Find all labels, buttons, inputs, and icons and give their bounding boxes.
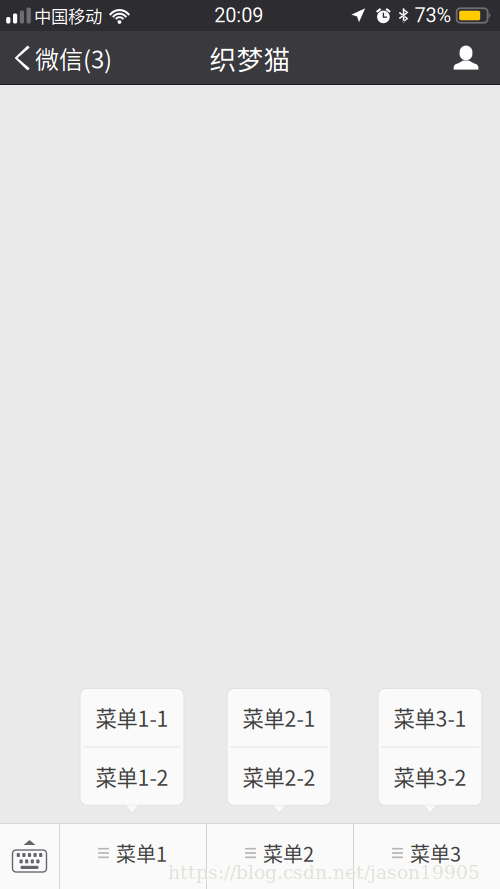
button[interactable]: 菜单1 (59, 823, 206, 889)
staticText: 菜单2-2 (242, 761, 315, 792)
staticText: 菜单1 (116, 838, 167, 867)
button[interactable]: 菜单2 (206, 823, 353, 889)
button[interactable]: 菜单3-1 (378, 688, 482, 746)
button[interactable]: 菜单3-2 (378, 747, 482, 805)
staticText: 菜单2-1 (242, 702, 315, 733)
staticText: 菜单3-2 (393, 761, 466, 792)
staticText: https://blog.csdn.net/jason19905 (168, 862, 480, 883)
staticText: 73% (415, 4, 452, 27)
button[interactable]: 菜单2-2 (227, 747, 331, 805)
staticText: 菜单3-1 (393, 702, 466, 733)
button[interactable]: 微信(3) (0, 31, 124, 85)
button[interactable]: 菜单1-1 (80, 688, 184, 746)
staticText: 微信(3) (35, 41, 112, 75)
button[interactable]: Keyboard (0, 823, 59, 889)
button[interactable]: 菜单1-2 (80, 747, 184, 805)
staticText: 菜单3 (410, 838, 461, 867)
staticText: 织梦猫 (209, 39, 290, 77)
staticText: 菜单1-1 (95, 702, 168, 733)
staticText: 菜单1-2 (95, 761, 168, 792)
button[interactable]: Profile (435, 31, 500, 85)
button[interactable]: 菜单2-1 (227, 688, 331, 746)
staticText: 菜单2 (263, 838, 314, 867)
staticText: 20:09 (214, 4, 263, 27)
button[interactable]: 菜单3 (353, 823, 500, 889)
staticText: 中国移动 (34, 3, 102, 28)
